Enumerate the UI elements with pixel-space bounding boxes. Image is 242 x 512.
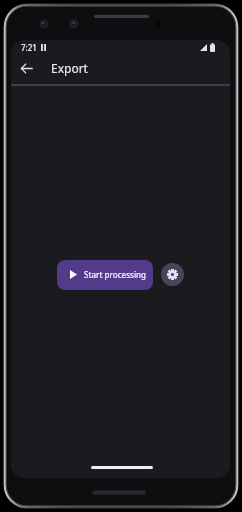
button[interactable]: Start processing xyxy=(57,260,153,290)
staticText: Export xyxy=(51,60,88,76)
button[interactable]: Back xyxy=(13,55,39,81)
staticText: Start processing xyxy=(84,269,147,280)
button[interactable]: Settings xyxy=(161,263,184,286)
staticText: 7:21 xyxy=(21,42,37,53)
